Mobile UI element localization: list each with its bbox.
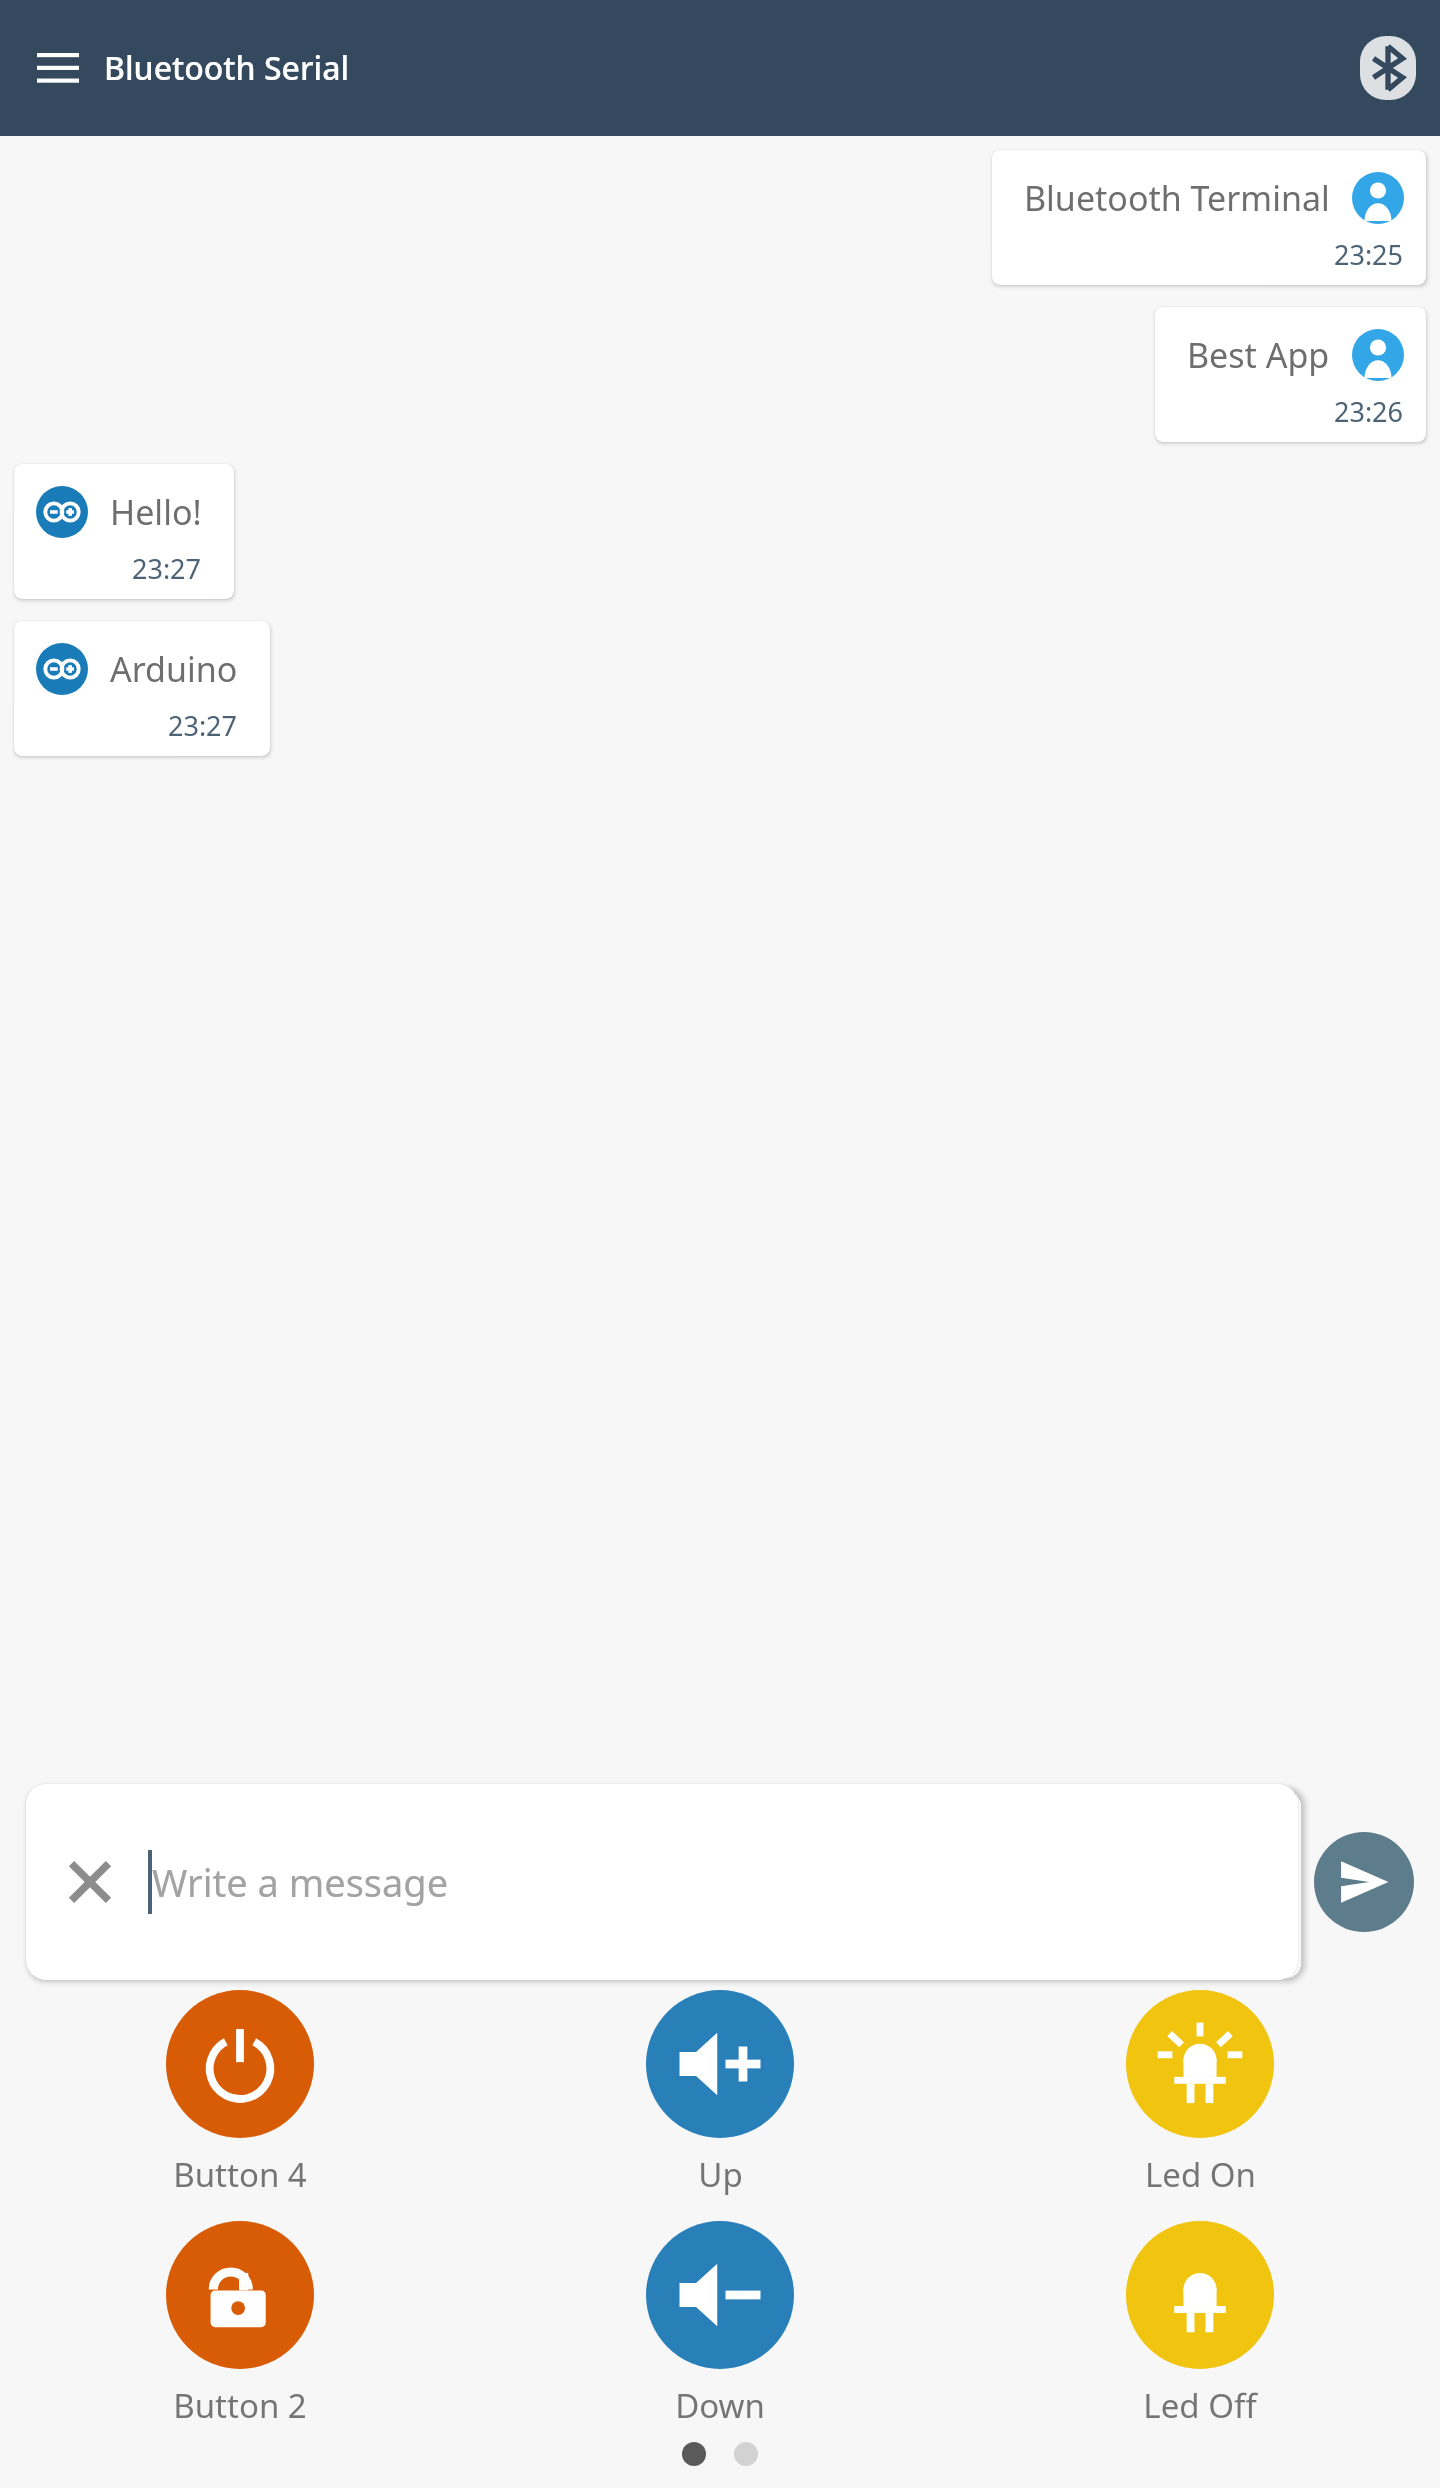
button[interactable]: Open navigation menu — [26, 36, 90, 100]
button[interactable]: Arduino — [14, 621, 270, 756]
button[interactable]: Page 1 — [682, 2442, 706, 2466]
staticText: Down — [675, 2383, 765, 2428]
button[interactable]: Page 2 — [734, 2442, 758, 2466]
staticText: Bluetooth Serial — [104, 46, 350, 90]
button[interactable]: Button 4 — [0, 1990, 480, 2197]
staticText: Up — [698, 2152, 743, 2197]
staticText: Bluetooth Terminal — [1024, 175, 1330, 221]
button[interactable]: Bluetooth connection status — [1360, 36, 1416, 100]
staticText: Led Off — [1143, 2383, 1257, 2428]
staticText: 23:26 — [1334, 393, 1404, 430]
button[interactable]: Clear message — [26, 1784, 1298, 1980]
staticText: Led On — [1145, 2152, 1256, 2197]
staticText: Write a message — [152, 1856, 449, 1908]
button[interactable]: Best App — [1155, 307, 1426, 442]
staticText: 23:27 — [168, 707, 238, 744]
button[interactable]: Down — [480, 2221, 960, 2428]
staticText: Button 4 — [173, 2152, 307, 2197]
button[interactable]: Hello! — [14, 464, 234, 599]
button[interactable]: Button 2 — [0, 2221, 480, 2428]
staticText: 23:25 — [1334, 236, 1404, 273]
staticText: Hello! — [110, 489, 202, 535]
staticText: Button 2 — [173, 2383, 307, 2428]
button[interactable]: Send message — [1314, 1832, 1414, 1932]
button[interactable]: Clear message — [54, 1846, 126, 1918]
button[interactable]: Led Off — [960, 2221, 1440, 2428]
staticText: 23:27 — [132, 550, 202, 587]
button[interactable]: Bluetooth Terminal — [992, 150, 1426, 285]
button[interactable]: Led On — [960, 1990, 1440, 2197]
staticText: Arduino — [110, 646, 238, 692]
staticText: Best App — [1187, 332, 1330, 378]
button[interactable]: Up — [480, 1990, 960, 2197]
